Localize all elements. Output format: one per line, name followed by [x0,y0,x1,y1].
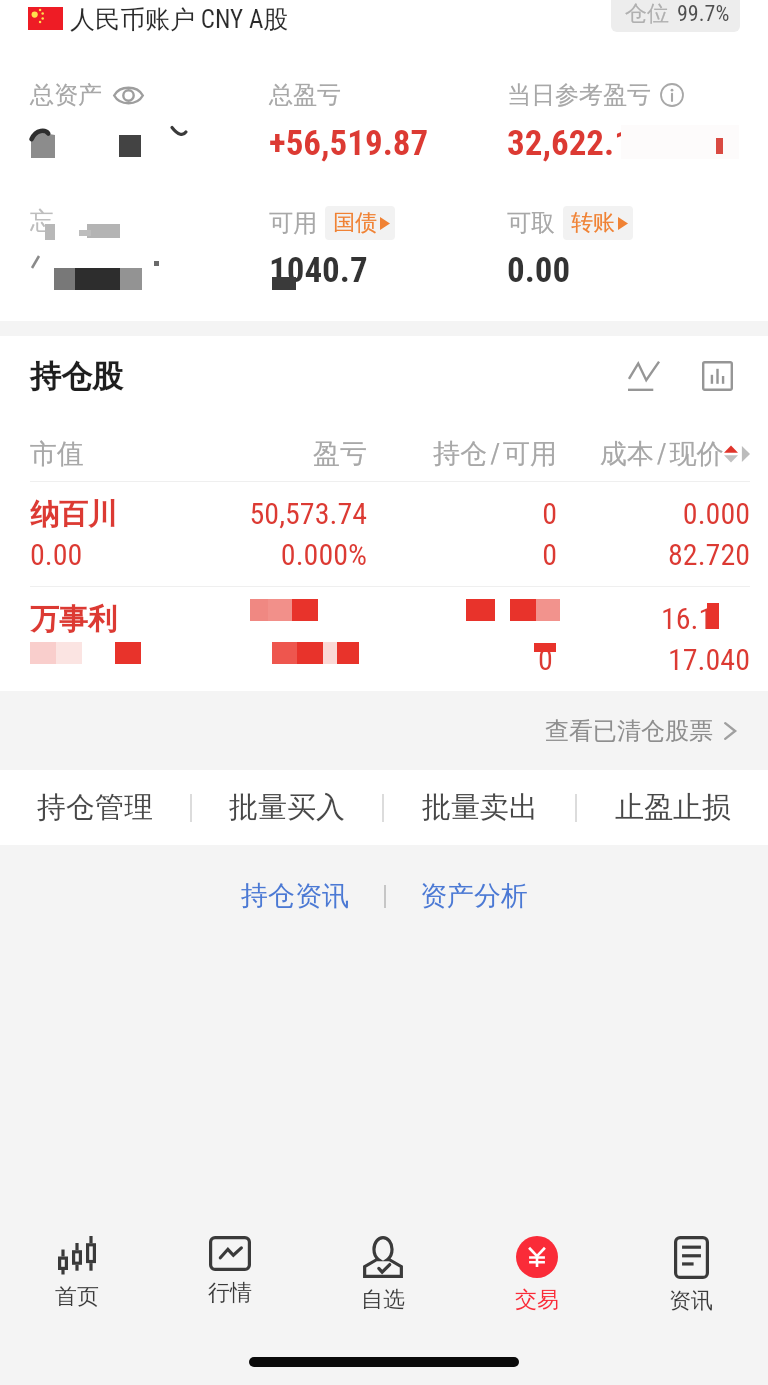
staticText: 首页 [55,1283,99,1311]
button[interactable]: Bar chart view [691,350,743,402]
button[interactable]: 纳百川 [0,482,768,587]
button[interactable]: 资产分析 [386,867,546,925]
staticText: 16.1 [661,601,714,636]
staticText: 仓位 [625,0,669,28]
button[interactable]: 仓位 [611,0,740,32]
staticText: 持仓管理 [37,789,153,826]
staticText: 批量买入 [229,789,345,826]
button[interactable]: 转账 [563,206,633,240]
staticText: 自选 [361,1286,405,1314]
staticText: 可用 [269,208,317,238]
staticText: 0.000 [557,496,750,531]
staticText: 忘 [30,206,54,236]
staticText: 批量卖出 [422,789,538,826]
staticText: 查看已清仓股票 [545,716,713,746]
staticText: 0 [538,642,553,677]
staticText: 止盈止损 [615,789,731,826]
staticText: 资讯 [669,1287,713,1315]
staticText: 0.00 [30,537,217,572]
staticText: 当日参考盈亏 [507,80,651,110]
button[interactable]: 止盈止损 [577,770,768,845]
staticText: 人民币账户 CNY A股 [70,4,289,35]
button[interactable]: 持仓管理 [0,770,190,845]
staticText: 国债 [333,209,377,237]
staticText: 盈亏 [217,437,367,471]
staticText: 0.000% [217,537,367,572]
button[interactable]: Toggle balance visibility [111,80,145,110]
staticText: 50,573.74 [217,496,367,531]
button[interactable]: 资讯 [614,1225,768,1325]
staticText: 万事利 [30,601,117,638]
staticText: 持仓 / 可用 [367,437,557,471]
staticText: 总资产 [30,80,102,110]
button[interactable]: 交易 [460,1225,614,1325]
staticText: 纳百川 [30,496,217,533]
staticText: 0 [367,537,557,572]
button[interactable]: 批量卖出 [384,770,575,845]
button[interactable]: 自选 [306,1225,460,1325]
staticText: 交易 [515,1286,559,1314]
staticText: 可取 [507,208,555,238]
button[interactable]: 查看已清仓股票 [0,691,768,770]
staticText: 成本 / 现价 [600,437,724,471]
button[interactable]: 持仓资讯 [223,867,384,925]
staticText: 持仓资讯 [241,879,349,913]
staticText: 市值 [30,437,217,471]
staticText: 99.7% [677,1,730,27]
staticText: 行情 [208,1279,252,1307]
button[interactable]: 行情 [153,1225,306,1325]
button[interactable]: 国债 [325,206,395,240]
button[interactable]: Line chart view [618,350,670,402]
staticText: 32,622.1 [507,123,632,164]
button[interactable]: Info about daily P&L [660,83,684,107]
staticText: 0 [367,496,557,531]
staticText: 资产分析 [420,879,528,913]
staticText: +56,519.87 [269,123,429,164]
staticText: 82.720 [557,537,750,572]
button[interactable]: 首页 [0,1225,153,1325]
button[interactable]: 批量买入 [192,770,382,845]
staticText: 17.040 [668,642,750,677]
button[interactable]: 万事利 [0,587,768,691]
staticText: 1040.7 [269,250,368,291]
staticText: 转账 [571,209,615,237]
staticText: 持仓股 [30,357,123,396]
staticText: 0.00 [507,250,571,291]
staticText: 总盈亏 [269,80,341,110]
